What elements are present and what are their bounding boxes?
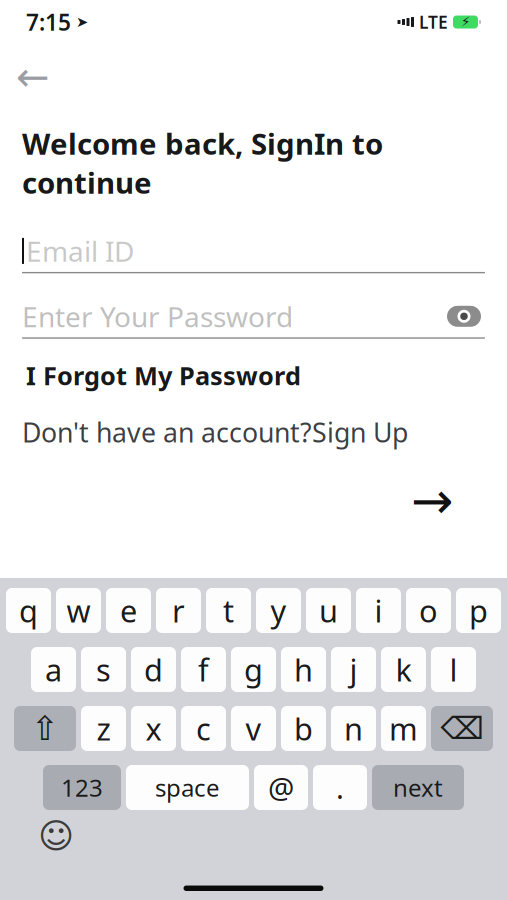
staticText: ⚡︎ [461, 14, 470, 29]
staticText: u [319, 590, 338, 631]
staticText: x [145, 708, 161, 749]
button[interactable]: @ [254, 765, 308, 810]
staticText: i [374, 590, 382, 631]
staticText: Don't have an account?Sign Up [22, 414, 408, 450]
staticText: Email ID [26, 232, 134, 269]
button[interactable]: h [281, 647, 326, 692]
staticText: q [19, 590, 38, 631]
staticText: ➤ [76, 14, 88, 30]
button[interactable]: w [56, 588, 101, 633]
staticText: Welcome back, SignIn to continue [22, 124, 383, 202]
staticText: 123 [61, 772, 103, 803]
button[interactable]: b [281, 706, 326, 751]
button[interactable]: s [81, 647, 126, 692]
button[interactable]: g [231, 647, 276, 692]
button[interactable]: u [306, 588, 351, 633]
staticText: s [96, 649, 111, 690]
button[interactable]: space [126, 765, 249, 810]
staticText: ⇧ [31, 710, 59, 747]
button[interactable]: x [131, 706, 176, 751]
staticText: n [344, 708, 363, 749]
button[interactable]: i [356, 588, 401, 633]
staticText: LTE [419, 10, 448, 33]
button[interactable]: t [206, 588, 251, 633]
staticText: p [469, 590, 488, 631]
staticText: t [223, 590, 234, 631]
staticText: e [120, 590, 137, 631]
button[interactable]: Don't have an account?Sign Up [22, 410, 408, 454]
button[interactable]: Delete [431, 706, 493, 751]
button[interactable]: d [131, 647, 176, 692]
button[interactable]: f [181, 647, 226, 692]
staticText: → [411, 472, 453, 529]
staticText: . [336, 768, 344, 807]
staticText: c [196, 708, 211, 749]
staticText: 7:15 [26, 7, 71, 37]
staticText: k [395, 649, 411, 690]
button[interactable]: Back [0, 56, 51, 98]
button[interactable]: y [256, 588, 301, 633]
button[interactable]: Continue [405, 478, 459, 524]
button[interactable]: z [81, 706, 126, 751]
button[interactable]: Show password [445, 304, 485, 328]
staticText: a [45, 649, 62, 690]
staticText: v [245, 708, 261, 749]
staticText: g [244, 649, 263, 690]
button[interactable]: p [456, 588, 501, 633]
button[interactable]: n [331, 706, 376, 751]
staticText: y [270, 590, 286, 631]
staticText: space [155, 772, 220, 803]
staticText: h [294, 649, 313, 690]
button[interactable]: k [381, 647, 426, 692]
staticText: r [172, 590, 185, 631]
staticText: b [294, 708, 313, 749]
staticText: ☺ [38, 816, 74, 856]
button[interactable]: next [372, 765, 464, 810]
staticText: ← [16, 54, 50, 100]
button[interactable]: v [231, 706, 276, 751]
staticText: m [389, 708, 418, 749]
button[interactable]: . [313, 765, 367, 810]
button[interactable]: I Forgot My Password [26, 355, 301, 396]
button[interactable]: q [6, 588, 51, 633]
staticText: f [198, 649, 209, 690]
staticText: ⌫ [440, 711, 483, 746]
staticText: z [96, 708, 110, 749]
button[interactable]: 123 [43, 765, 121, 810]
staticText: I Forgot My Password [26, 359, 301, 392]
staticText: d [144, 649, 163, 690]
button[interactable]: Shift [14, 706, 76, 751]
button[interactable]: a [31, 647, 76, 692]
staticText: Enter Your Password [22, 298, 293, 335]
button[interactable]: Emoji keyboard [38, 818, 74, 854]
staticText: next [393, 772, 443, 803]
button[interactable]: o [406, 588, 451, 633]
button[interactable]: c [181, 706, 226, 751]
button[interactable]: e [106, 588, 151, 633]
button[interactable]: j [331, 647, 376, 692]
button[interactable]: r [156, 588, 201, 633]
staticText: @ [268, 768, 294, 807]
button[interactable]: l [431, 647, 476, 692]
staticText: l [449, 649, 457, 690]
button[interactable]: m [381, 706, 426, 751]
staticText: w [66, 590, 90, 631]
staticText: o [419, 590, 438, 631]
staticText: j [349, 649, 357, 690]
